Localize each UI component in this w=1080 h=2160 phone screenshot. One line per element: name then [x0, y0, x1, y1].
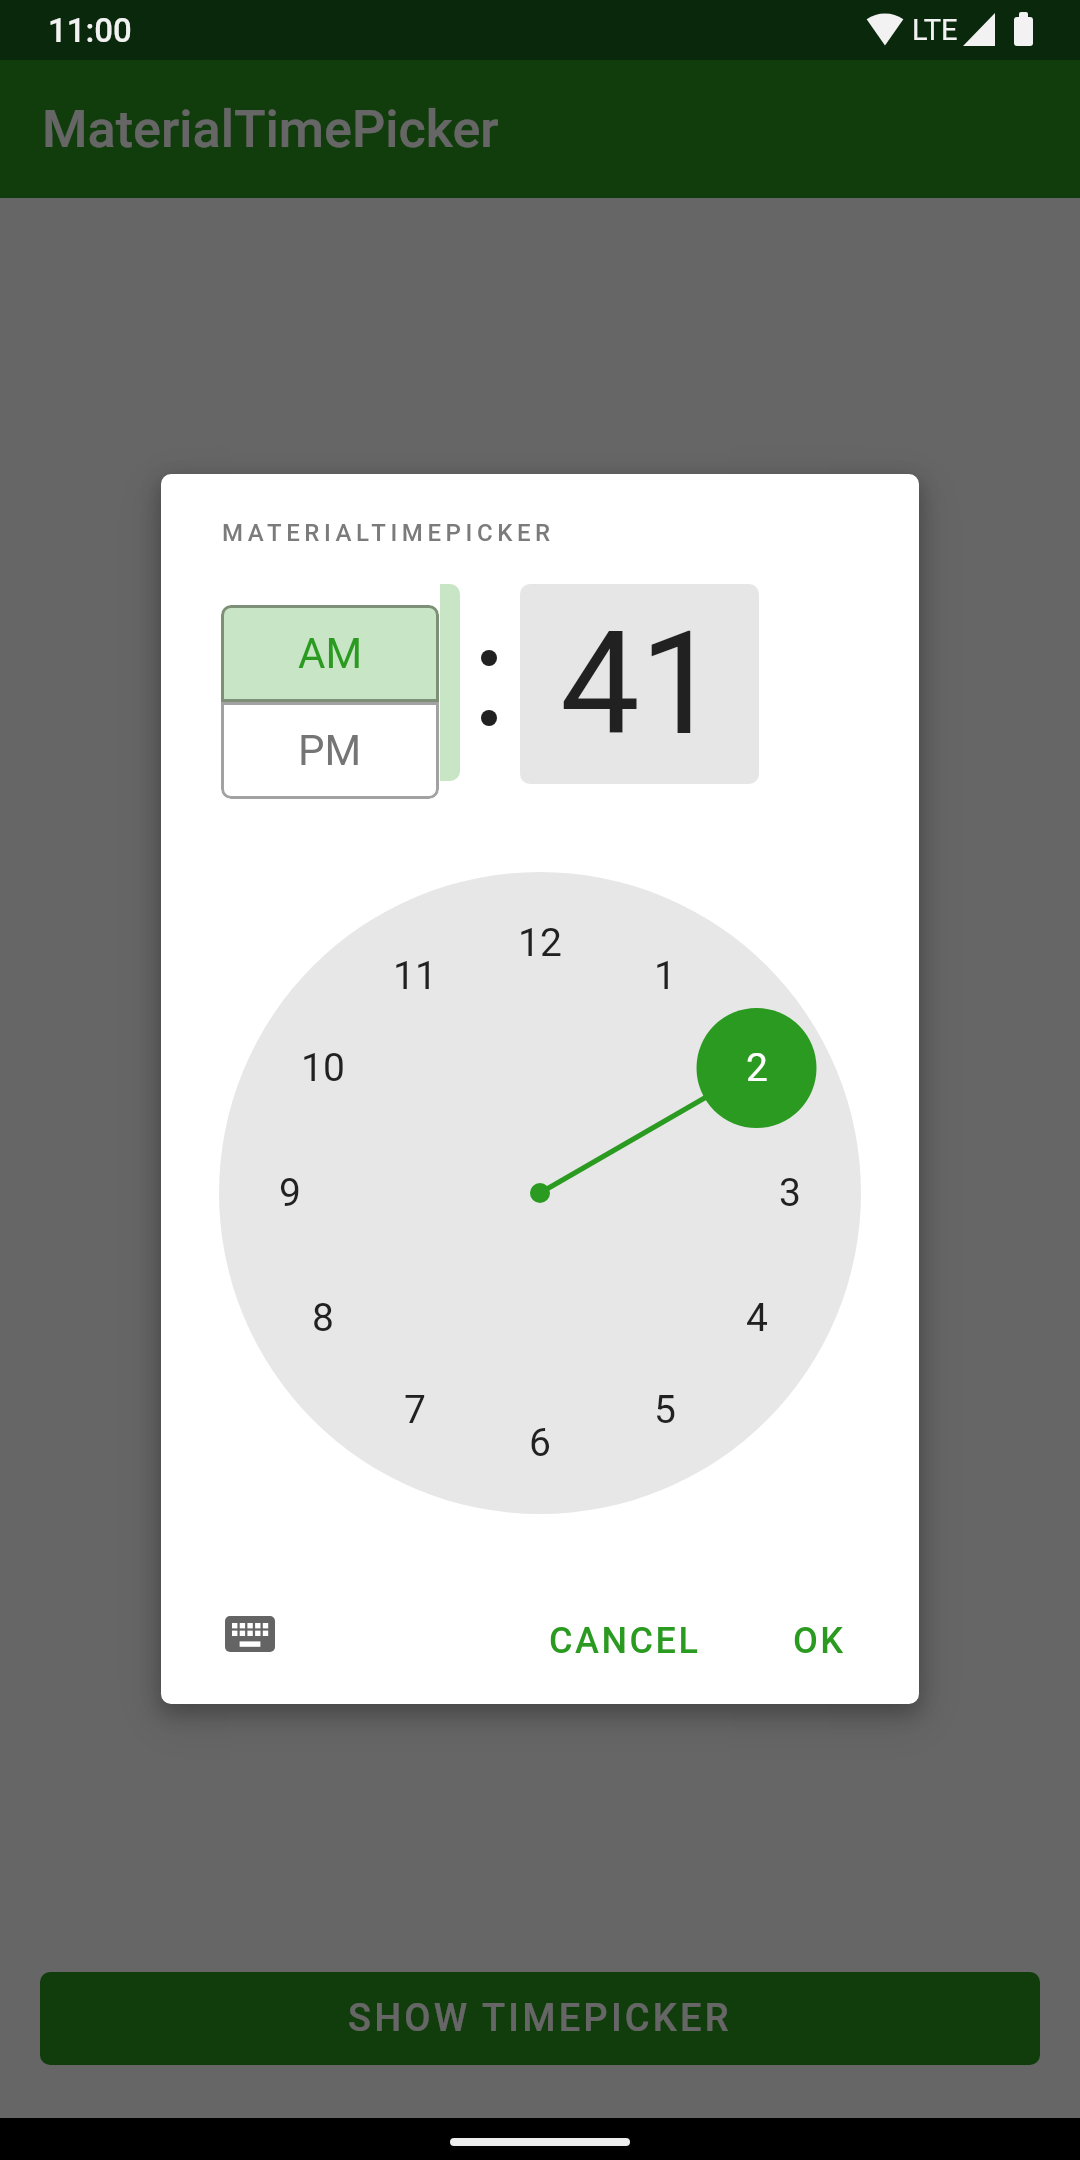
- staticText: 9: [279, 1170, 301, 1216]
- staticText: MaterialTimePicker: [42, 99, 499, 160]
- staticText: 4: [746, 1295, 768, 1341]
- staticText: 1: [654, 953, 676, 999]
- staticText: 10: [301, 1045, 345, 1091]
- button[interactable]: PM: [221, 702, 439, 799]
- staticText: 2: [746, 1045, 768, 1091]
- staticText: 3: [779, 1170, 801, 1216]
- staticText: 11: [393, 953, 437, 999]
- staticText: MATERIALTIMEPICKER: [222, 519, 555, 547]
- button[interactable]: AM: [221, 605, 439, 702]
- button[interactable]: [213, 1601, 287, 1667]
- staticText: 6: [529, 1420, 551, 1466]
- staticText: SHOW TIMEPICKER: [348, 1996, 732, 2041]
- staticText: 41: [560, 601, 720, 767]
- staticText: AM: [298, 629, 363, 678]
- staticText: LTE: [912, 13, 958, 47]
- staticText: OK: [793, 1620, 846, 1662]
- button[interactable]: [440, 584, 460, 781]
- button[interactable]: 41: [520, 584, 759, 784]
- staticText: 11:00: [48, 11, 132, 50]
- button[interactable]: OK: [774, 1611, 864, 1671]
- staticText: 8: [312, 1295, 334, 1341]
- staticText: 7: [404, 1387, 426, 1433]
- button[interactable]: SHOW TIMEPICKER: [40, 1972, 1040, 2065]
- button[interactable]: CANCEL: [540, 1611, 710, 1671]
- staticText: 12: [518, 920, 562, 966]
- staticText: 5: [654, 1387, 676, 1433]
- staticText: PM: [298, 726, 362, 775]
- staticText: CANCEL: [549, 1620, 701, 1662]
